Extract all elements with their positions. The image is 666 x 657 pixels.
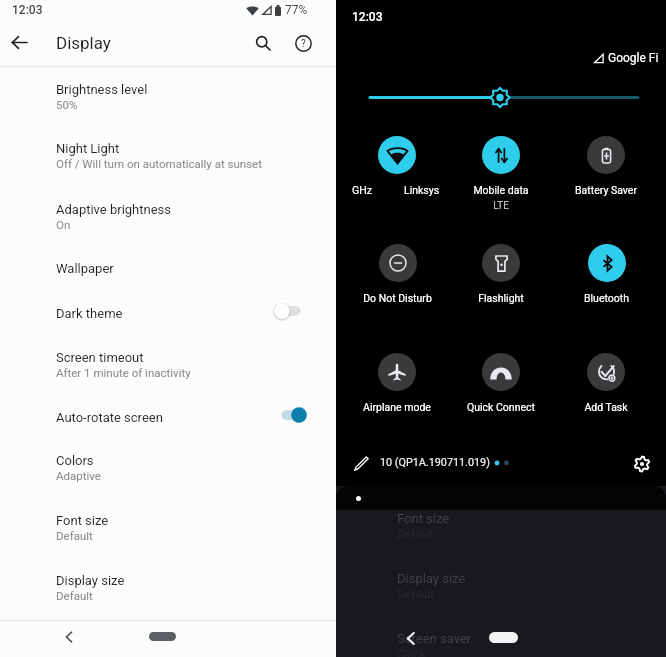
staticText: Mobile data <box>473 184 529 196</box>
staticText: 12:03 <box>352 10 383 24</box>
staticText: Adaptive brightness <box>56 202 172 217</box>
button[interactable]: Battery Saver <box>554 134 658 212</box>
staticText: Auto-rotate screen <box>56 410 163 425</box>
staticText: Font size <box>56 513 109 528</box>
staticText: Battery Saver <box>575 184 637 196</box>
button[interactable]: Wallpaper <box>0 251 336 287</box>
staticText: Quick Connect <box>467 401 535 413</box>
button[interactable]: Edit <box>350 452 372 474</box>
button[interactable]: Mobile data <box>449 134 553 212</box>
button[interactable]: Flashlight <box>449 242 553 320</box>
button[interactable] <box>273 402 307 428</box>
button[interactable]: Quick Connect <box>449 351 553 429</box>
staticText: Adaptive <box>56 469 101 482</box>
button[interactable]: Colors <box>0 443 336 487</box>
button[interactable]: Screen timeout <box>0 340 336 384</box>
staticText: Screen timeout <box>56 350 144 365</box>
button[interactable]: Dark theme <box>0 296 336 332</box>
staticText: Add Task <box>584 401 628 413</box>
button[interactable]: Help <box>290 30 316 56</box>
staticText: 10 (QP1A.190711.019) <box>380 456 490 469</box>
button[interactable]: Back <box>6 29 32 55</box>
staticText: Default <box>56 529 93 542</box>
staticText: Dark theme <box>56 306 123 321</box>
staticText: After 1 minute of inactivity <box>56 366 191 379</box>
staticText: Colors <box>56 453 94 468</box>
button[interactable]: Auto-rotate screen <box>0 400 336 436</box>
button[interactable]: Wi-Fi Linksys 5GHz <box>345 134 449 212</box>
staticText: Wallpaper <box>56 261 114 276</box>
staticText: Display size <box>56 573 125 588</box>
button[interactable]: Back <box>57 625 81 649</box>
button[interactable]: Airplane mode <box>345 351 449 429</box>
button[interactable]: Font size <box>0 503 336 547</box>
staticText: Do Not Disturb <box>363 292 432 304</box>
button[interactable]: Display size <box>0 563 336 607</box>
staticText: Off / Will turn on automatically at suns… <box>56 157 262 170</box>
staticText: Default <box>397 587 434 600</box>
staticText: 50% <box>56 98 78 111</box>
button[interactable]: Adaptive brightness <box>0 192 336 236</box>
staticText: GHz <box>352 184 372 196</box>
button[interactable]: Brightness <box>336 83 666 111</box>
button[interactable]: Do Not Disturb <box>345 242 449 320</box>
button[interactable]: Search <box>250 30 276 56</box>
staticText: Flashlight <box>478 292 524 304</box>
staticText: Display size <box>397 571 466 586</box>
staticText: Default <box>56 589 93 602</box>
button[interactable]: Add Task <box>554 351 658 429</box>
button[interactable]: Bluetooth <box>554 242 658 320</box>
staticText: Airplane mode <box>363 401 431 413</box>
button[interactable]: Night Light <box>0 131 336 175</box>
staticText: Google Fi <box>608 51 659 65</box>
staticText: Font size <box>397 511 450 526</box>
button[interactable]: Font size <box>336 501 666 545</box>
button[interactable] <box>273 298 307 324</box>
staticText: Night Light <box>56 141 120 156</box>
staticText: Linksys <box>404 184 440 196</box>
staticText: 12:03 <box>12 3 43 17</box>
button[interactable]: Brightness level <box>0 72 336 116</box>
button[interactable]: Screen saver <box>336 621 666 657</box>
staticText: ? <box>301 38 306 50</box>
button[interactable]: Home <box>149 632 176 641</box>
staticText: On <box>56 218 71 231</box>
staticText: Screen saver <box>397 631 472 646</box>
button[interactable]: Display size <box>336 561 666 605</box>
staticText: Brightness level <box>56 82 148 97</box>
staticText: Clock <box>397 647 426 657</box>
button[interactable]: Settings <box>630 452 654 476</box>
staticText: Default <box>397 527 434 540</box>
staticText: LTE <box>493 200 509 212</box>
staticText: 77% <box>285 3 308 17</box>
staticText: Bluetooth <box>584 292 629 304</box>
staticText: Display <box>56 33 111 53</box>
